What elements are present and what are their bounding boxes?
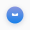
- button[interactable]: Mail: [6, 6, 23, 23]
